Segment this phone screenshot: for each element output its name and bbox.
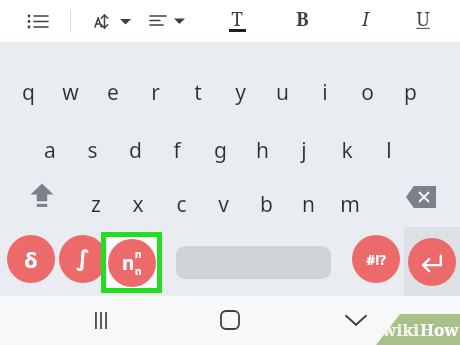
staticText: f [173,136,181,165]
button[interactable]: Enter [408,238,456,286]
button[interactable]: g [200,127,240,173]
button[interactable]: Superscript and subscript [108,239,156,287]
button[interactable]: Alignment [148,7,196,37]
staticText: ∫ [76,246,90,272]
button[interactable]: r [135,69,175,115]
button[interactable]: p [390,69,430,115]
button[interactable]: x [118,181,158,227]
button[interactable]: Bulleted list [25,8,53,36]
staticText: z [91,190,101,219]
button[interactable]: Italic [350,4,380,38]
staticText: s [87,136,98,165]
staticText: q [22,78,35,107]
staticText: #!? [366,250,386,269]
button[interactable]: Font size [90,7,138,37]
button[interactable]: i [305,69,345,115]
staticText: How [420,318,459,341]
button[interactable]: q [8,69,48,115]
button[interactable]: Underline [408,4,438,38]
staticText: B [296,6,309,32]
staticText: t [194,78,202,107]
button[interactable]: Text color [222,4,252,38]
button[interactable]: m [330,181,370,227]
button[interactable]: j [284,127,324,173]
button[interactable]: h [242,127,282,173]
staticText: δ [24,244,38,274]
button[interactable]: c [161,181,201,227]
staticText: n [135,247,142,261]
button[interactable]: v [203,181,243,227]
staticText: r [151,78,160,107]
staticText: I [362,6,369,32]
button[interactable]: n [288,181,328,227]
staticText: v [218,190,229,219]
button[interactable]: Home [211,306,249,334]
button[interactable]: e [93,69,133,115]
staticText: T [231,6,243,32]
button[interactable]: b [246,181,286,227]
staticText: b [260,190,273,219]
button[interactable]: Symbols [352,235,400,283]
button[interactable]: s [72,127,112,173]
staticText: j [301,136,307,165]
staticText: n [135,264,142,278]
staticText: o [361,78,374,107]
staticText: c [176,190,187,219]
staticText: a [44,136,56,165]
button[interactable]: l [369,127,409,173]
button[interactable]: Delta symbol [7,235,55,283]
staticText: u [276,78,289,107]
staticText: p [404,78,417,107]
button[interactable]: y [220,69,260,115]
staticText: l [386,136,392,165]
staticText: h [256,136,269,165]
button[interactable]: f [157,127,197,173]
button[interactable]: d [115,127,155,173]
staticText: U [416,6,430,32]
button[interactable]: u [262,69,302,115]
button[interactable]: o [347,69,387,115]
button[interactable]: Backspace [400,180,442,214]
staticText: n [122,250,135,276]
button[interactable]: k [327,127,367,173]
button[interactable]: z [76,181,116,227]
staticText: g [214,136,227,165]
button[interactable]: t [178,69,218,115]
button[interactable]: Bold [287,4,317,38]
staticText: d [129,136,142,165]
button[interactable]: Recent apps [82,306,120,334]
button[interactable]: Integral symbol [59,235,107,283]
staticText: k [341,136,353,165]
button[interactable]: Shift [22,175,62,215]
staticText: x [132,190,144,219]
staticText: n [302,190,315,219]
button[interactable]: a [30,127,70,173]
staticText: i [322,78,328,107]
staticText: wiki [382,318,420,341]
staticText: y [235,78,246,107]
staticText: w [62,78,79,107]
button[interactable]: w [50,69,90,115]
staticText: m [340,190,360,219]
button[interactable]: Hide keyboard [337,306,375,334]
staticText: e [107,78,119,107]
